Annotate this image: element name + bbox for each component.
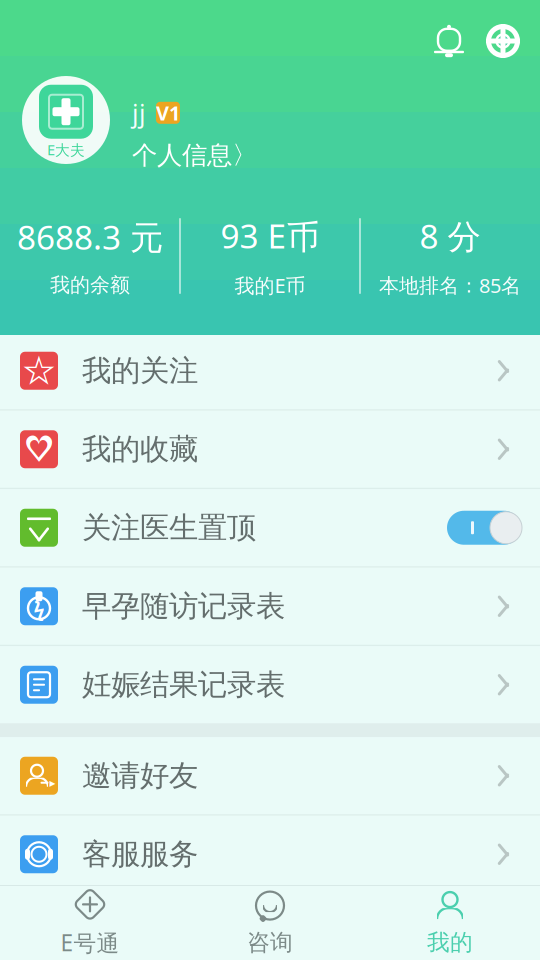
staticText: 93 E币 <box>220 213 319 258</box>
staticText: E号通 <box>60 927 119 958</box>
button[interactable]: ϟ <box>0 568 540 645</box>
button[interactable]: 我的 <box>360 885 540 959</box>
staticText: 咨询 <box>247 929 293 956</box>
button[interactable]: ♥ <box>0 411 540 488</box>
button[interactable]: ▸ <box>0 737 540 814</box>
staticText: 8 分 <box>419 214 480 258</box>
button[interactable]: Notifications <box>422 14 476 68</box>
staticText: 早孕随访记录表 <box>82 588 285 624</box>
staticText: 客服服务 <box>82 836 198 872</box>
button[interactable]: 个人信息〉 <box>132 140 257 171</box>
staticText: 妊娠结果记录表 <box>82 667 285 703</box>
staticText: E大夫 <box>47 140 85 159</box>
staticText: 个人信息〉 <box>132 140 257 171</box>
button[interactable]: 客服服务 <box>0 816 540 893</box>
staticText: 我的E币 <box>234 272 305 298</box>
staticText: ★ <box>26 355 51 387</box>
staticText: 我的 <box>427 929 473 956</box>
button[interactable]: Avatar <box>22 76 110 164</box>
staticText: V1 <box>156 99 180 126</box>
staticText: 本地排名：85名 <box>379 272 521 298</box>
button[interactable]: E号通 <box>0 885 180 959</box>
staticText: ▸ <box>49 776 55 789</box>
staticText: ♥ <box>23 429 55 470</box>
button[interactable]: Settings <box>476 14 530 68</box>
staticText: jj <box>132 96 146 130</box>
button[interactable]: 妊娠结果记录表 <box>0 646 540 723</box>
staticText: 邀请好友 <box>82 758 198 794</box>
staticText: 我的关注 <box>82 353 198 389</box>
staticText: 我的收藏 <box>82 431 198 467</box>
staticText: ★ <box>21 348 57 393</box>
button[interactable]: 咨询 <box>180 885 360 959</box>
staticText: 我的余额 <box>50 273 130 297</box>
staticText: ϟ <box>33 595 44 622</box>
staticText: 8688.3 元 <box>17 215 163 259</box>
button[interactable]: ★ <box>0 332 540 409</box>
staticText: 关注医生置顶 <box>82 510 256 546</box>
button[interactable]: 关注医生置顶 <box>0 489 540 566</box>
staticText: ♥ <box>28 436 50 463</box>
